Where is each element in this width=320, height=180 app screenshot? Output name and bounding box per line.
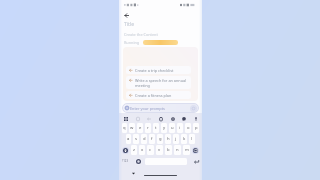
button[interactable]: i (177, 123, 183, 133)
button[interactable]: s (133, 134, 139, 144)
button[interactable]: Backspace (191, 145, 200, 155)
button[interactable]: Send (190, 105, 197, 112)
button[interactable]: w (129, 123, 135, 133)
button[interactable]: Sticker (134, 115, 141, 122)
button[interactable]: Shift (121, 145, 130, 155)
staticText: n (176, 147, 179, 153)
button[interactable]: d (141, 134, 147, 144)
button[interactable]: y (161, 123, 167, 133)
button[interactable]: p (193, 123, 199, 133)
staticText: l (191, 136, 193, 142)
button[interactable]: f (149, 134, 155, 144)
staticText: Create a trip checklist (135, 68, 174, 73)
staticText: i (179, 125, 181, 131)
button[interactable]: m (183, 145, 190, 155)
button[interactable]: Settings (169, 115, 176, 122)
staticText: Create the Content (124, 32, 158, 37)
button[interactable]: k (181, 134, 187, 144)
staticText: x (141, 147, 144, 153)
button[interactable]: Write a speech for an annual meeting (126, 76, 191, 89)
staticText: z (133, 147, 135, 153)
button[interactable]: u (169, 123, 175, 133)
button[interactable]: Emoji (180, 115, 187, 122)
staticText: Enter your prompts (130, 106, 165, 111)
staticText: h (167, 136, 170, 142)
button[interactable]: r (145, 123, 151, 133)
staticText: o (187, 125, 190, 131)
staticText: f (151, 136, 153, 142)
button[interactable]: o (185, 123, 191, 133)
button[interactable]: j (173, 134, 179, 144)
staticText: e (139, 125, 142, 131)
button[interactable]: h (165, 134, 171, 144)
staticText: a (127, 136, 130, 142)
staticText: Running (124, 40, 140, 45)
staticText: m (185, 147, 189, 153)
button[interactable]: Create a trip checklist (126, 66, 191, 74)
button[interactable]: Emoji (135, 158, 142, 165)
staticText: Title (124, 21, 134, 28)
button[interactable]: l (189, 134, 195, 144)
staticText: q (123, 125, 126, 131)
button[interactable]: z (131, 145, 137, 155)
staticText: Create a fitness plan (135, 93, 172, 98)
staticText: b (167, 147, 170, 153)
staticText: ?123 (122, 159, 129, 163)
button[interactable]: v (156, 145, 163, 155)
button[interactable]: Voice input (192, 115, 199, 122)
button[interactable]: Enter (192, 156, 200, 166)
button[interactable]: e (137, 123, 143, 133)
button[interactable]: a (126, 134, 131, 144)
staticText: v (158, 147, 161, 153)
button[interactable]: x (139, 145, 145, 155)
staticText: g (159, 136, 162, 142)
button[interactable]: c (147, 145, 154, 155)
button[interactable]: Apps (122, 115, 129, 122)
staticText: y (163, 125, 166, 131)
button[interactable]: t (153, 123, 159, 133)
staticText: d (143, 136, 146, 142)
button[interactable]: Create a fitness plan (126, 91, 191, 99)
staticText: r (147, 125, 149, 131)
staticText: s (135, 136, 138, 142)
staticText: w (130, 125, 134, 131)
staticText: k (183, 136, 186, 142)
button[interactable]: Symbols (121, 156, 130, 166)
button[interactable]: n (174, 145, 181, 155)
button[interactable]: Hide keyboard (130, 170, 136, 176)
staticText: j (175, 136, 177, 142)
button[interactable]: q (122, 123, 127, 133)
staticText: Write a speech for an annual meeting (135, 78, 187, 88)
button[interactable]: g (157, 134, 163, 144)
staticText: c (149, 147, 152, 153)
staticText: t (155, 125, 157, 131)
button[interactable]: b (165, 145, 172, 155)
button[interactable]: Back (122, 11, 130, 19)
button[interactable]: Clipboard (157, 115, 164, 122)
button[interactable]: Enter your prompts (122, 103, 199, 113)
staticText: p (195, 125, 198, 131)
button[interactable]: GIF (145, 115, 152, 122)
staticText: u (171, 125, 174, 131)
